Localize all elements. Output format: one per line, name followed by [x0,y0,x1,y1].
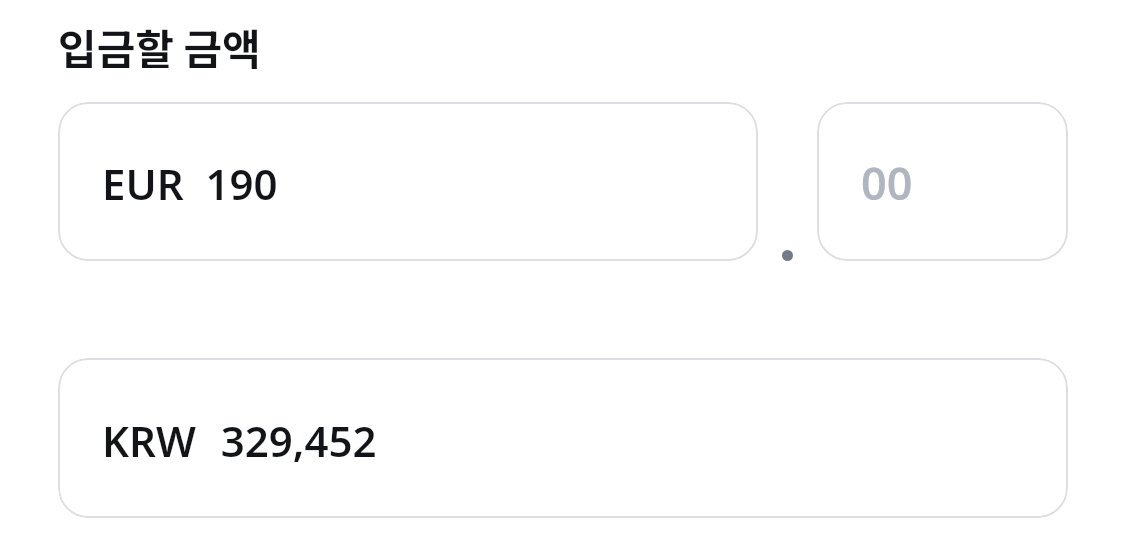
button[interactable]: Amount to deposit in EUR, 190 [58,102,758,261]
button[interactable]: Converted amount, KRW 329,452 [58,358,1068,518]
button[interactable]: Cents, 00 [817,102,1068,261]
staticText: 00 [861,152,913,213]
staticText: 입금할 금액 [58,16,261,77]
staticText: EUR 190 [102,155,278,212]
staticText: KRW 329,452 [102,412,377,469]
